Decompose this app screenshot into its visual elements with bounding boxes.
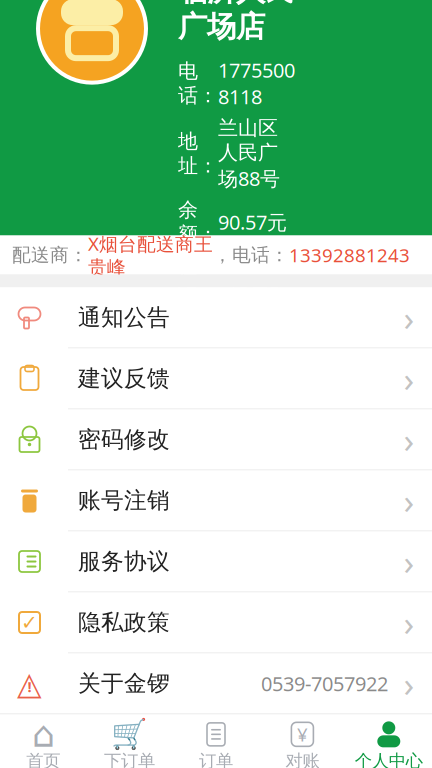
staticText: 13392881243 [289, 243, 410, 267]
staticText: 17755008118 [218, 57, 295, 110]
staticText: 兰山区人民广场88号 [218, 116, 280, 191]
button[interactable]: ✓ [0, 592, 432, 653]
staticText: 90.57元 [218, 209, 287, 235]
staticText: 临沂人民广场店 [178, 0, 294, 45]
staticText: 密码修改 [78, 426, 170, 453]
staticText: 个人中心 [355, 750, 423, 768]
staticText: ¥ [297, 722, 308, 747]
staticText: 建档： [178, 267, 218, 316]
staticText: ! [27, 677, 31, 696]
staticText: 通知公告 [78, 304, 170, 331]
button[interactable]: ⌂ [0, 714, 86, 768]
staticText: 关于金锣 [78, 670, 170, 697]
staticText: 订单 [199, 750, 233, 768]
button[interactable]: △ [0, 653, 432, 713]
button[interactable]: 服务协议 [0, 531, 432, 592]
staticText: 建议反馈 [78, 365, 170, 392]
staticText: 14-12-27（9年2个月） [218, 253, 296, 330]
staticText: › [403, 477, 414, 523]
staticText: ✓ [21, 611, 38, 634]
staticText: 电话： [232, 243, 289, 266]
button[interactable]: 建议反馈 [0, 348, 432, 409]
staticText: 对账 [285, 750, 319, 768]
staticText: ⌂ [32, 714, 55, 755]
staticText: 余额： [178, 197, 218, 247]
staticText: 账号注销 [78, 487, 170, 514]
staticText: 0539-7057922 [261, 670, 388, 697]
staticText: 服务协议 [78, 548, 170, 575]
staticText: △ [17, 665, 42, 702]
button[interactable]: 密码修改 [0, 409, 432, 470]
staticText: 隐私政策 [78, 609, 170, 636]
staticText: › [403, 538, 414, 584]
button[interactable]: 订单 [173, 714, 259, 768]
staticText: › [403, 355, 414, 401]
staticText: ， [213, 243, 232, 266]
staticText: › [403, 599, 414, 645]
staticText: 下订单 [104, 750, 155, 768]
staticText: 配送商： [12, 243, 88, 266]
button[interactable]: ¥ [259, 714, 346, 768]
staticText: 首页 [26, 750, 60, 768]
staticText: 地址： [178, 129, 218, 178]
button[interactable]: 🛒 [86, 714, 173, 768]
staticText: X烟台配送商王贵峰 [88, 231, 213, 279]
staticText: › [403, 416, 414, 462]
staticText: 电话： [178, 59, 218, 108]
button[interactable]: 账号注销 [0, 470, 432, 531]
staticText: 🛒 [111, 718, 148, 751]
staticText: › [403, 294, 414, 340]
button[interactable]: 通知公告 [0, 287, 432, 348]
button[interactable]: 个人中心 [346, 714, 432, 768]
staticText: › [403, 660, 414, 706]
